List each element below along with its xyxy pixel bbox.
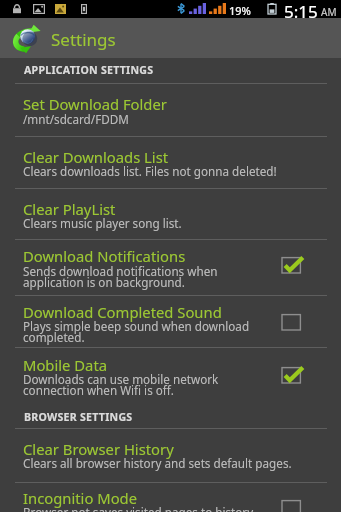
staticText: Clear Browser History (23, 439, 174, 459)
staticText: Clears downloads list. Files not gonna d… (23, 163, 277, 179)
staticText: /mnt/sdcard/FDDM (23, 111, 129, 127)
staticText: Download Completed Sound (23, 302, 222, 322)
staticText: BROWSER SETTINGS (24, 410, 133, 424)
staticText: Browser not saves visited pages to histo… (23, 504, 256, 512)
staticText: Set Download Folder (23, 94, 167, 114)
staticText: Clears all browser history and sets defa… (23, 455, 292, 471)
button[interactable]: Download Completed Sound (0, 296, 341, 348)
staticText: Settings (51, 28, 116, 51)
staticText: AM (321, 5, 337, 19)
button[interactable]: Incognitio Mode (0, 483, 341, 512)
staticText: 5:15 (284, 0, 318, 18)
button[interactable]: Download Completed Sound disabled (272, 312, 312, 331)
button[interactable]: Mobile Data (0, 348, 341, 405)
staticText: Clear PlayList (23, 199, 116, 219)
staticText: APPLICATION SETTINGS (24, 63, 154, 77)
staticText: 19% (229, 3, 251, 18)
staticText: Mobile Data (23, 355, 108, 375)
button[interactable]: Settings (0, 18, 341, 58)
button[interactable]: Clear PlayList (0, 189, 341, 240)
button[interactable]: Download Notifications (0, 240, 341, 296)
button[interactable]: Mobile Data enabled (272, 365, 312, 384)
button[interactable]: Clear Downloads List (0, 137, 341, 189)
button[interactable]: Download Notifications enabled (272, 255, 312, 274)
button[interactable]: Clear Browser History (0, 429, 341, 483)
staticText: Clears music player song list. (23, 215, 182, 231)
staticText: Incognitio Mode (23, 488, 138, 508)
staticText: Downloads can use mobile network connect… (23, 371, 219, 398)
staticText: Plays simple beep sound when download co… (23, 318, 250, 345)
staticText: Download Notifications (23, 246, 186, 266)
button[interactable]: Set Download Folder (0, 84, 341, 137)
staticText: Sends download notifications when applic… (23, 263, 218, 290)
staticText: Clear Downloads List (23, 147, 169, 167)
button[interactable]: Incognitio Mode disabled (272, 498, 312, 512)
